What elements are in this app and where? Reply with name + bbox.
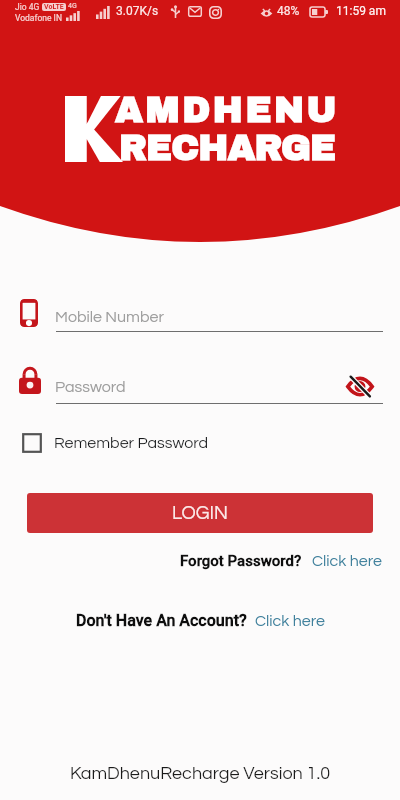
- staticText: Forgot Password?: [180, 552, 302, 570]
- staticText: Click here: [312, 553, 382, 569]
- staticText: Remember Password: [54, 435, 209, 451]
- staticText: RECHARGE: [119, 128, 336, 167]
- staticText: LOGIN: [172, 503, 228, 523]
- staticText: VoLTE: [44, 3, 64, 11]
- staticText: AMDHENU: [115, 90, 340, 129]
- staticText: 4G: [68, 2, 77, 10]
- staticText: 11:59 am: [336, 4, 386, 18]
- staticText: 3.07K/s: [116, 4, 159, 18]
- staticText: Mobile Number: [55, 309, 164, 325]
- staticText: Jio 4G: [15, 2, 40, 12]
- staticText: Vodafone IN: [15, 13, 62, 23]
- staticText: KamDhenuRecharge Version 1.0: [0, 764, 400, 783]
- staticText: 48%: [277, 4, 300, 18]
- staticText: Click here: [255, 613, 325, 629]
- button[interactable]: Click here: [255, 613, 325, 629]
- staticText: Don't Have An Account?: [76, 611, 247, 630]
- button[interactable]: Click here: [312, 553, 382, 569]
- button[interactable]: Remember Password: [22, 429, 209, 457]
- button[interactable]: Show password: [347, 372, 373, 398]
- staticText: Password: [55, 379, 126, 395]
- button[interactable]: LOGIN: [27, 493, 373, 533]
